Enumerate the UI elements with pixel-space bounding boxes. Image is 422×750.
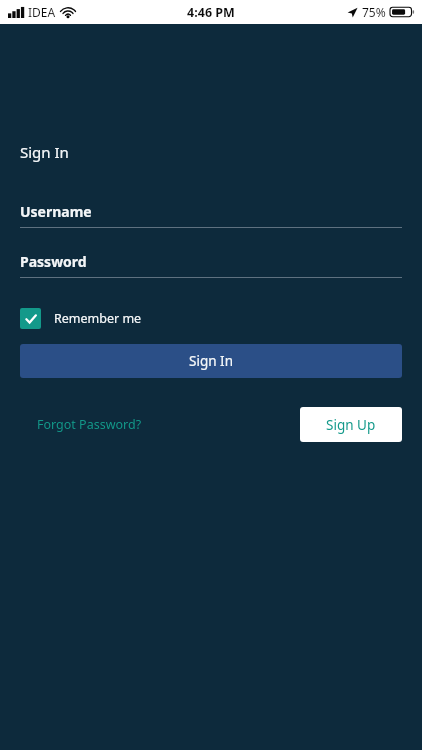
button[interactable]: Forgot Password?: [20, 410, 148, 439]
staticText: Username: [20, 202, 92, 221]
staticText: Forgot Password?: [37, 416, 142, 433]
staticText: Sign In: [189, 352, 233, 370]
staticText: 4:46 PM: [187, 4, 235, 21]
staticText: IDEA: [28, 4, 56, 20]
button[interactable]: Sign In: [20, 344, 402, 378]
staticText: Password: [20, 252, 87, 271]
staticText: Remember me: [54, 310, 142, 327]
button[interactable]: Password: [20, 252, 402, 278]
button[interactable]: Username: [20, 202, 402, 228]
staticText: Sign Up: [326, 416, 376, 434]
staticText: 75%: [362, 4, 386, 20]
button[interactable]: Remember me: [20, 308, 148, 329]
button[interactable]: Sign Up: [300, 407, 402, 442]
staticText: Sign In: [20, 142, 69, 162]
